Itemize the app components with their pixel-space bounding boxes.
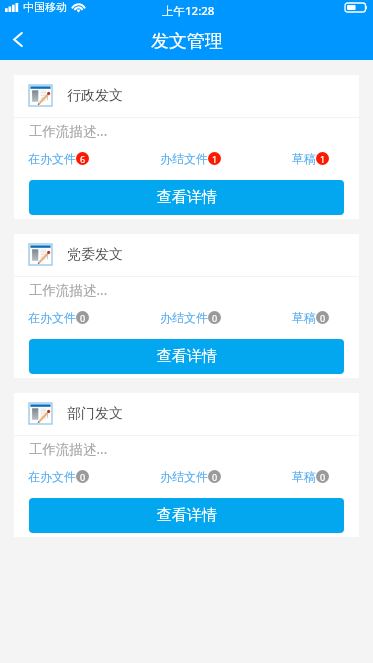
staticText: 0 <box>80 471 86 483</box>
staticText: 在办文件 <box>28 151 76 166</box>
staticText: 0 <box>212 312 218 324</box>
button[interactable]: 查看详情 <box>29 498 344 533</box>
button[interactable]: 办结文件 <box>160 469 221 484</box>
staticText: 1 <box>320 153 326 165</box>
staticText: 工作流描述... <box>29 440 108 458</box>
staticText: 草稿 <box>292 151 316 166</box>
button[interactable]: 在办文件 <box>28 469 89 484</box>
staticText: 行政发文 <box>67 87 123 105</box>
staticText: 工作流描述... <box>29 281 108 299</box>
button[interactable]: Back <box>0 22 36 60</box>
staticText: 0 <box>320 312 326 324</box>
staticText: 0 <box>80 312 86 324</box>
staticText: 办结文件 <box>160 310 208 325</box>
staticText: 发文管理 <box>151 30 223 53</box>
staticText: 工作流描述... <box>29 122 108 140</box>
staticText: 查看详情 <box>157 347 217 366</box>
button[interactable]: 办结文件 <box>160 310 221 325</box>
staticText: 查看详情 <box>157 506 217 525</box>
button[interactable]: 在办文件 <box>28 151 89 166</box>
button[interactable]: 查看详情 <box>29 339 344 374</box>
button[interactable]: 草稿 <box>292 151 329 166</box>
staticText: 0 <box>212 471 218 483</box>
button[interactable]: 部门发文 <box>14 393 359 537</box>
staticText: 中国移动 <box>23 0 67 14</box>
staticText: 草稿 <box>292 469 316 484</box>
staticText: 6 <box>80 153 86 165</box>
button[interactable]: 查看详情 <box>29 180 344 215</box>
staticText: 办结文件 <box>160 151 208 166</box>
staticText: 党委发文 <box>67 246 123 264</box>
staticText: 部门发文 <box>67 405 123 423</box>
staticText: 草稿 <box>292 310 316 325</box>
staticText: 1 <box>212 153 218 165</box>
staticText: 上午12:28 <box>162 3 215 19</box>
button[interactable]: 办结文件 <box>160 151 221 166</box>
staticText: 在办文件 <box>28 469 76 484</box>
button[interactable]: 在办文件 <box>28 310 89 325</box>
button[interactable]: 草稿 <box>292 310 329 325</box>
staticText: 查看详情 <box>157 188 217 207</box>
staticText: 在办文件 <box>28 310 76 325</box>
staticText: 办结文件 <box>160 469 208 484</box>
button[interactable]: 行政发文 <box>14 75 359 219</box>
button[interactable]: 党委发文 <box>14 234 359 378</box>
staticText: 0 <box>320 471 326 483</box>
button[interactable]: 草稿 <box>292 469 329 484</box>
